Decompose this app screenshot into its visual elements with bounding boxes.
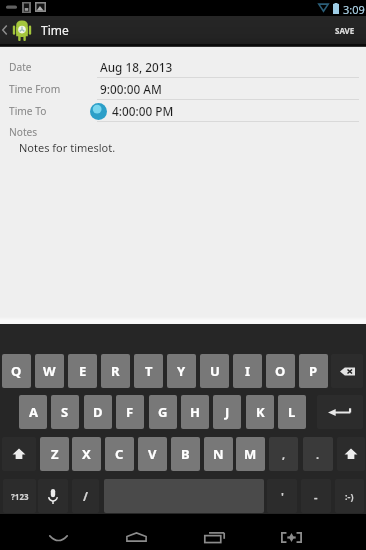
button[interactable]: N	[204, 437, 233, 471]
staticText: T	[145, 362, 153, 380]
button[interactable]: M	[236, 437, 265, 471]
staticText: H	[190, 403, 200, 421]
staticText: O	[275, 362, 286, 380]
button[interactable]: Navigate up	[0, 16, 34, 44]
button[interactable]: .	[303, 437, 333, 471]
staticText: /	[83, 488, 88, 504]
staticText: Date	[9, 60, 32, 74]
button[interactable]: Y	[167, 354, 196, 388]
button[interactable]: B	[171, 437, 200, 471]
button[interactable]: Back	[26, 514, 90, 550]
staticText: SAVE	[335, 25, 355, 36]
button[interactable]: K	[246, 395, 274, 429]
button[interactable]: Time From	[0, 78, 366, 100]
staticText: Z	[51, 445, 59, 463]
staticText: Time	[41, 22, 69, 38]
button[interactable]: W	[35, 354, 64, 388]
button[interactable]: Enter	[317, 395, 363, 429]
staticText: Notes for timeslot.	[19, 140, 116, 155]
button[interactable]: :-)	[335, 479, 364, 513]
button[interactable]: O	[266, 354, 295, 388]
button[interactable]: L	[278, 395, 306, 429]
staticText: U	[210, 362, 220, 380]
button[interactable]: I	[233, 354, 262, 388]
button[interactable]: G	[149, 395, 177, 429]
button[interactable]: SAVE	[324, 16, 366, 44]
button[interactable]: /	[72, 479, 99, 513]
staticText: K	[256, 403, 265, 421]
button[interactable]: X	[72, 437, 101, 471]
button[interactable]: Shift	[2, 437, 36, 471]
button[interactable]: Switch keyboard	[259, 514, 323, 550]
staticText: R	[111, 362, 120, 380]
staticText: '	[281, 489, 284, 504]
button[interactable]: J	[213, 395, 241, 429]
button[interactable]: ,	[269, 437, 298, 471]
staticText: M	[244, 445, 257, 463]
staticText: .	[316, 447, 320, 462]
staticText: -	[314, 489, 318, 504]
staticText: Aug 18, 2013	[100, 59, 173, 75]
button[interactable]: P	[299, 354, 328, 388]
button[interactable]: E	[68, 354, 97, 388]
button[interactable]: D	[84, 395, 112, 429]
staticText: :-)	[345, 490, 354, 502]
button[interactable]: Recent apps	[182, 514, 246, 550]
button[interactable]: Q	[2, 354, 31, 388]
staticText: B	[181, 445, 190, 463]
staticText: 3:09	[343, 2, 365, 17]
button[interactable]: Voice input	[38, 479, 68, 513]
staticText: J	[225, 403, 230, 421]
staticText: W	[43, 362, 56, 380]
button[interactable]: Date	[0, 56, 366, 78]
staticText: Notes	[9, 125, 38, 139]
button[interactable]: U	[200, 354, 229, 388]
staticText: P	[309, 362, 318, 380]
staticText: Y	[177, 362, 186, 380]
button[interactable]: Shift	[337, 437, 365, 471]
button[interactable]: -	[301, 479, 331, 513]
staticText: 4:00:00 PM	[112, 103, 174, 119]
staticText: Time To	[9, 104, 47, 118]
staticText: 9:00:00 AM	[100, 81, 162, 97]
staticText: ,	[282, 447, 286, 462]
button[interactable]: Home	[104, 514, 168, 550]
staticText: Time From	[9, 82, 61, 96]
staticText: X	[82, 445, 91, 463]
button[interactable]: ?123	[3, 479, 36, 513]
button[interactable]: R	[101, 354, 130, 388]
staticText: L	[288, 403, 296, 421]
staticText: I	[245, 362, 251, 380]
staticText: D	[93, 403, 103, 421]
staticText: C	[115, 445, 124, 463]
button[interactable]: S	[51, 395, 79, 429]
button[interactable]: V	[138, 437, 167, 471]
button[interactable]: H	[181, 395, 209, 429]
staticText: A	[29, 403, 38, 421]
staticText: S	[61, 403, 69, 421]
staticText: V	[148, 445, 157, 463]
button[interactable]: '	[267, 479, 297, 513]
button[interactable]: Z	[40, 437, 69, 471]
button[interactable]: A	[19, 395, 47, 429]
button[interactable]: Time To	[0, 100, 366, 122]
staticText: G	[158, 403, 168, 421]
staticText: E	[79, 362, 87, 380]
button[interactable]: F	[116, 395, 144, 429]
staticText: Q	[11, 362, 22, 380]
button[interactable]: Backspace	[331, 354, 363, 388]
staticText: F	[126, 403, 134, 421]
button[interactable]: C	[105, 437, 134, 471]
staticText: N	[213, 445, 224, 463]
button[interactable]: T	[134, 354, 163, 388]
staticText: ?123	[11, 491, 29, 502]
